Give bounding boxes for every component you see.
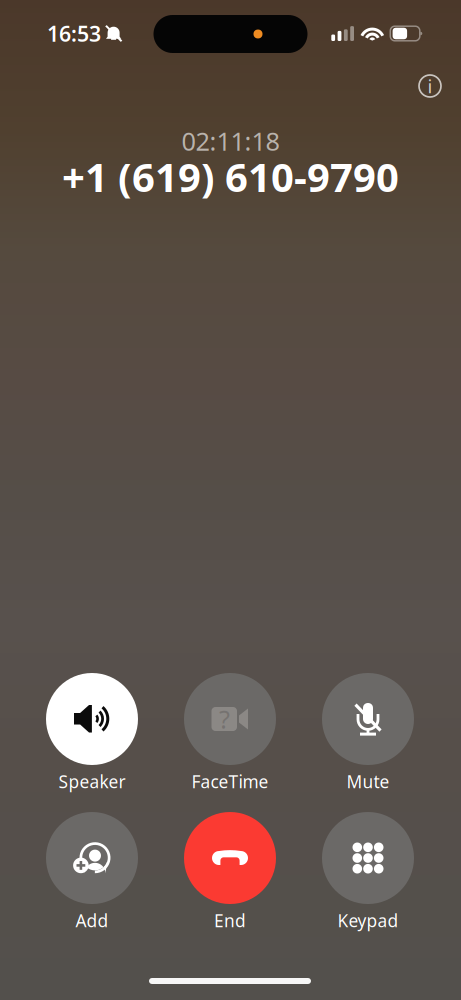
button[interactable]: Mute bbox=[299, 673, 437, 793]
staticText: Add bbox=[75, 909, 108, 932]
staticText: 02:11:18 bbox=[181, 124, 279, 158]
button[interactable]: Add bbox=[23, 812, 161, 932]
staticText: FaceTime bbox=[191, 770, 268, 793]
staticText: Keypad bbox=[337, 909, 398, 932]
staticText: End bbox=[214, 909, 246, 932]
button[interactable]: Keypad bbox=[299, 812, 437, 932]
staticText: +1 (619) 610-9790 bbox=[62, 150, 399, 203]
button[interactable]: Call details bbox=[410, 66, 450, 106]
staticText: i bbox=[427, 74, 432, 98]
button[interactable]: ? bbox=[161, 673, 299, 793]
button[interactable]: Speaker bbox=[23, 673, 161, 793]
staticText: 16:53 bbox=[47, 19, 101, 48]
staticText: Mute bbox=[346, 770, 389, 793]
staticText: ? bbox=[219, 702, 230, 736]
staticText: Speaker bbox=[58, 770, 125, 793]
button[interactable]: End bbox=[161, 812, 299, 932]
